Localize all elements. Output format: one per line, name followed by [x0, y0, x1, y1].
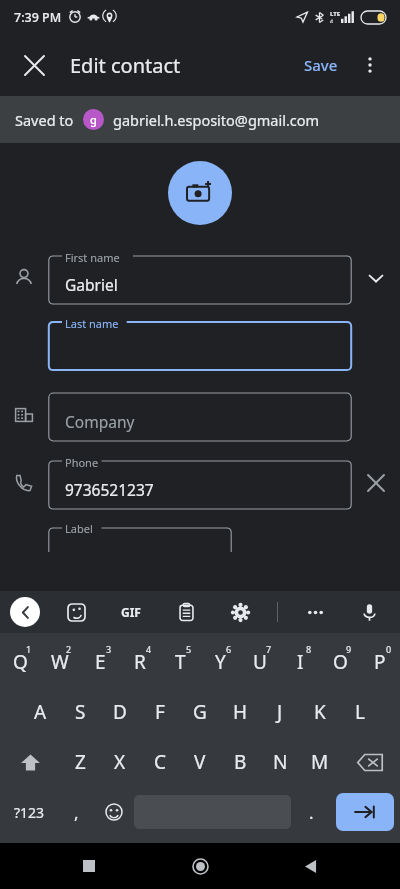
button[interactable]: Phone — [48, 455, 352, 511]
button[interactable]: O — [320, 637, 360, 687]
staticText: g — [90, 112, 97, 127]
button[interactable]: Settings — [223, 595, 257, 629]
button[interactable]: Stickers — [59, 595, 93, 629]
staticText: Label — [65, 521, 93, 536]
staticText: 0 — [386, 643, 392, 655]
staticText: 2 — [66, 643, 72, 655]
button[interactable]: Company — [48, 387, 352, 443]
button[interactable]: Y — [200, 637, 240, 687]
staticText: L — [355, 699, 365, 725]
button[interactable]: Clipboard — [169, 595, 203, 629]
button[interactable]: S — [60, 687, 100, 737]
staticText: gabriel.h.esposito@gmail.com — [113, 110, 320, 130]
staticText: 1 — [26, 643, 32, 655]
staticText: J — [277, 699, 283, 725]
button[interactable]: Clear phone — [356, 463, 396, 503]
staticText: E — [95, 649, 106, 675]
staticText: 42 — [322, 12, 332, 23]
button[interactable]: K — [300, 687, 340, 737]
staticText: U — [253, 649, 267, 675]
staticText: R — [134, 649, 146, 675]
button[interactable]: Back — [10, 597, 40, 627]
staticText: Saved to — [15, 110, 74, 130]
button[interactable]: I — [280, 637, 320, 687]
staticText: N — [273, 749, 288, 775]
staticText: B — [234, 749, 247, 775]
staticText: 5 — [186, 643, 192, 655]
staticText: D — [113, 699, 127, 725]
staticText: 8 — [306, 643, 312, 655]
button[interactable]: N — [260, 737, 300, 787]
button[interactable]: L — [340, 687, 380, 737]
button[interactable]: P — [360, 637, 400, 687]
button[interactable]: T — [160, 637, 200, 687]
staticText: 4 — [146, 643, 152, 655]
staticText: 9736521237 — [65, 479, 154, 500]
staticText: ıt — [330, 18, 334, 25]
staticText: A — [34, 699, 47, 725]
button[interactable]: V — [180, 737, 220, 787]
button[interactable]: Expand name fields — [356, 258, 396, 298]
button[interactable]: Last name — [48, 316, 352, 372]
button[interactable]: GIF — [112, 593, 150, 631]
staticText: 7:39 PM — [14, 9, 62, 26]
staticText: S — [75, 699, 86, 725]
staticText: F — [155, 699, 165, 725]
button[interactable]: First name — [48, 250, 352, 306]
staticText: , — [74, 801, 79, 824]
button[interactable]: U — [240, 637, 280, 687]
button[interactable]: R — [120, 637, 160, 687]
button[interactable]: Q — [0, 637, 40, 687]
staticText: C — [154, 749, 167, 775]
button[interactable]: B — [220, 737, 260, 787]
button[interactable]: . — [293, 787, 330, 837]
staticText: M — [311, 749, 329, 775]
button[interactable]: C — [140, 737, 180, 787]
staticText: T — [175, 649, 186, 675]
staticText: Z — [75, 749, 86, 775]
button[interactable]: Z — [60, 737, 100, 787]
staticText: X — [114, 749, 126, 775]
staticText: Save — [304, 55, 338, 75]
staticText: I — [297, 649, 304, 675]
staticText: . — [309, 801, 314, 824]
button[interactable]: Emoji — [95, 787, 132, 837]
staticText: H — [233, 699, 248, 725]
staticText: W — [51, 649, 69, 675]
button[interactable]: Recents — [67, 844, 111, 888]
button[interactable]: ?123 — [0, 787, 58, 837]
button[interactable]: X — [100, 737, 140, 787]
staticText: Y — [215, 649, 226, 675]
button[interactable]: W — [40, 637, 80, 687]
button[interactable]: Add photo — [168, 161, 232, 225]
button[interactable]: H — [220, 687, 260, 737]
staticText: V — [194, 749, 206, 775]
other: Company — [14, 405, 34, 425]
button[interactable]: J — [260, 687, 300, 737]
button[interactable]: E — [80, 637, 120, 687]
button[interactable]: Shift — [0, 737, 60, 787]
staticText: 9 — [346, 643, 352, 655]
staticText: Q — [13, 649, 28, 675]
staticText: 7 — [266, 643, 272, 655]
button[interactable]: Backspace — [340, 737, 400, 787]
button[interactable]: Next field — [336, 793, 394, 831]
button[interactable]: G — [180, 687, 220, 737]
staticText: Phone — [65, 455, 99, 470]
button[interactable]: Save — [296, 49, 346, 81]
button[interactable]: More options — [352, 47, 388, 83]
button[interactable]: F — [140, 687, 180, 737]
button[interactable]: More — [298, 595, 332, 629]
button[interactable]: , — [58, 787, 95, 837]
staticText: ?123 — [14, 803, 45, 822]
staticText: Last name — [65, 316, 119, 331]
button[interactable]: Back — [289, 844, 333, 888]
other: Name — [14, 268, 34, 288]
button[interactable]: Close — [12, 43, 56, 87]
button[interactable]: D — [100, 687, 140, 737]
button[interactable]: Voice input — [352, 595, 386, 629]
button[interactable]: A — [20, 687, 60, 737]
button[interactable]: Home — [178, 844, 222, 888]
button[interactable]: M — [300, 737, 340, 787]
